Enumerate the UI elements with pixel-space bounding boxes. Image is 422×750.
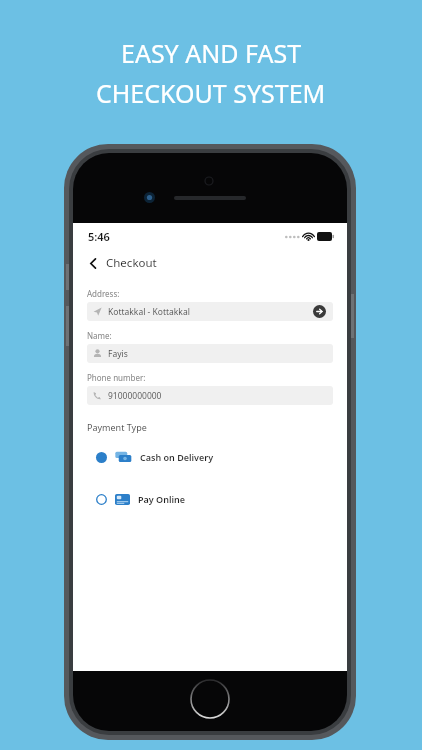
staticText: 5:46 xyxy=(88,229,110,244)
button[interactable]: Pay Online xyxy=(87,489,333,509)
staticText: 91000000000 xyxy=(108,390,162,402)
staticText: Phone number: xyxy=(87,372,146,383)
button[interactable]: Kottakkal - Kottakkal xyxy=(87,302,333,321)
staticText: Pay Online xyxy=(138,493,185,505)
staticText: Kottakkal - Kottakkal xyxy=(108,306,190,318)
staticText: Name: xyxy=(87,330,112,341)
button[interactable]: Cash on Delivery xyxy=(87,447,333,467)
staticText: Checkout xyxy=(106,255,157,271)
button[interactable]: Back xyxy=(82,252,104,274)
staticText: Cash on Delivery xyxy=(140,451,214,463)
staticText: CHECKOUT SYSTEM xyxy=(96,76,326,110)
staticText: Fayis xyxy=(108,348,128,360)
button[interactable]: Fayis xyxy=(87,344,333,363)
staticText: Payment Type xyxy=(87,421,147,433)
staticText: Address: xyxy=(87,288,120,299)
staticText: EASY AND FAST xyxy=(121,36,302,70)
button[interactable]: 91000000000 xyxy=(87,386,333,405)
button[interactable]: Change address xyxy=(312,304,327,319)
